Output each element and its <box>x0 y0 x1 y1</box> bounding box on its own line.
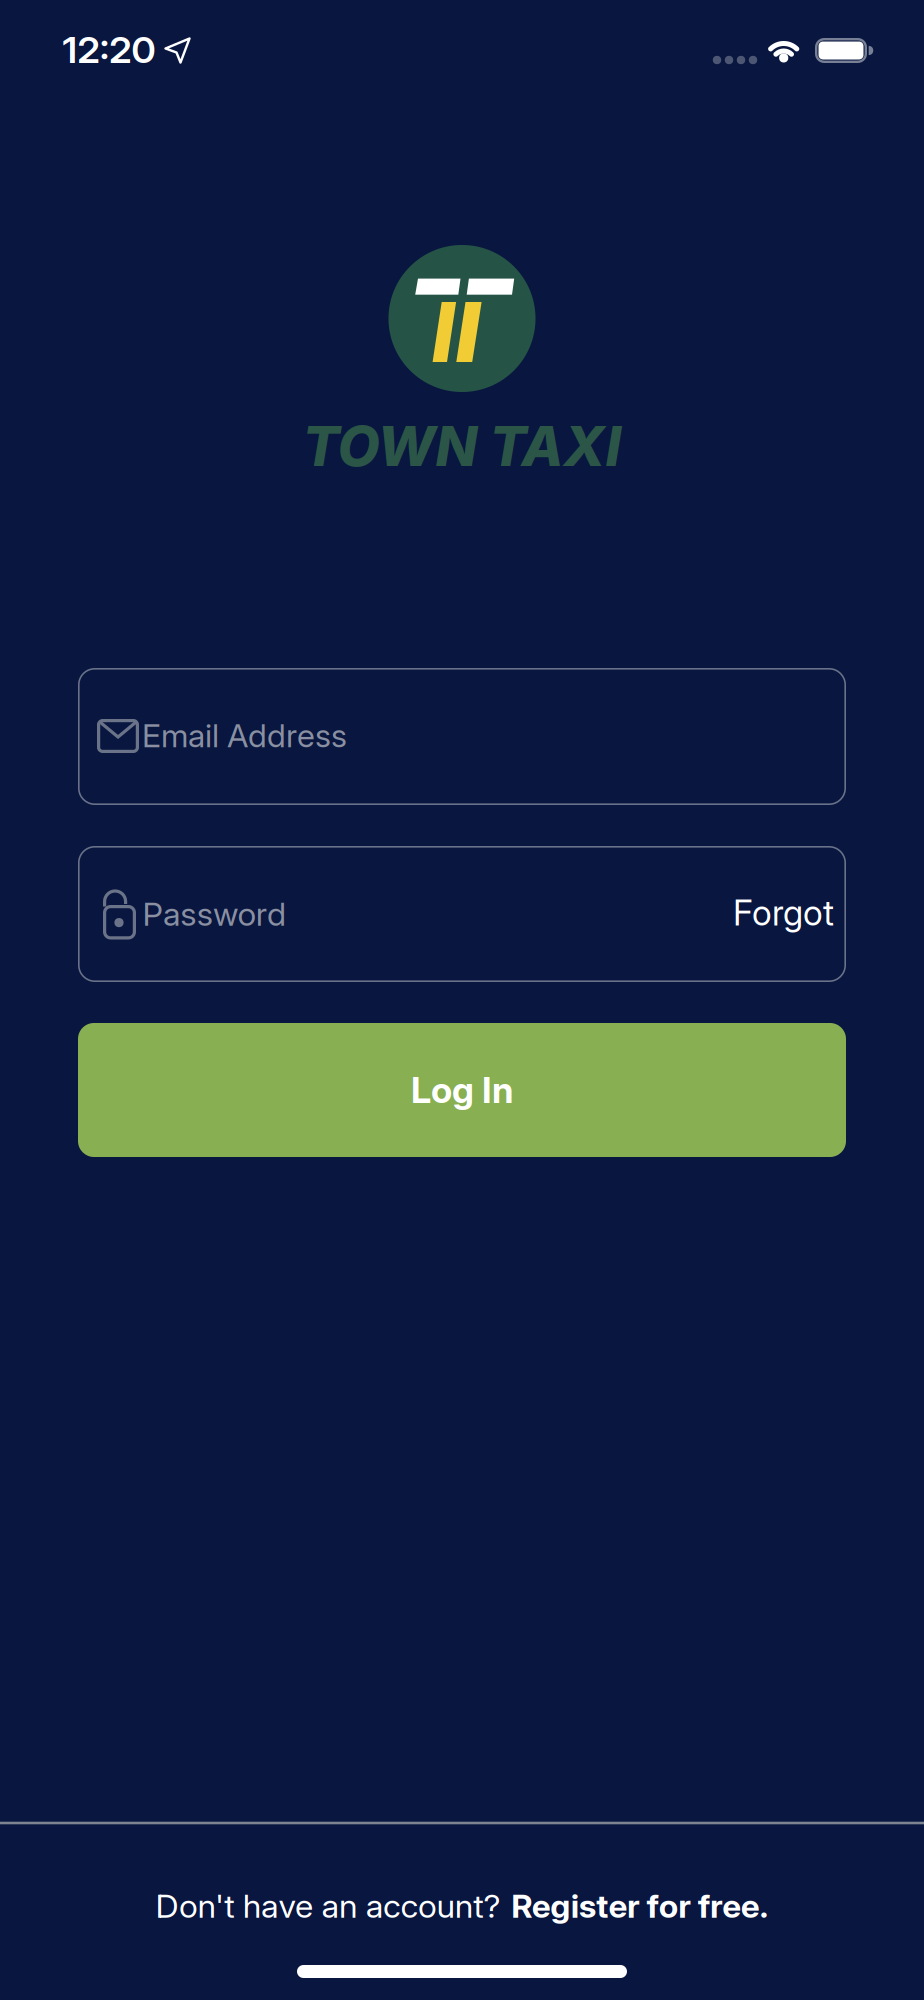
staticText: Password <box>144 895 285 933</box>
staticText: Forgot <box>733 892 834 934</box>
staticText: TOWN TAXI <box>302 413 621 479</box>
button[interactable]: Don't have an account? <box>163 1887 761 1925</box>
staticText: Don't have an account? <box>163 1887 500 1925</box>
staticText: Register for free. <box>510 1887 761 1925</box>
button[interactable]: Email Address <box>78 668 846 805</box>
staticText: Log In <box>411 1068 513 1112</box>
staticText: Email Address <box>142 716 347 755</box>
staticText: 12:20 <box>65 28 153 72</box>
button[interactable]: Forgot <box>733 892 834 934</box>
button[interactable]: Log In <box>78 1023 846 1157</box>
button[interactable]: Password <box>78 846 846 982</box>
